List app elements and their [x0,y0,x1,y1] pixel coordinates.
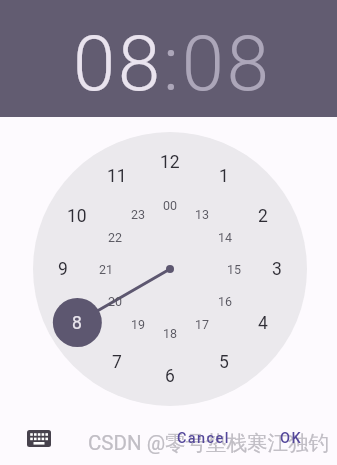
staticText: 18 [163,326,178,341]
staticText: 4 [258,313,268,334]
staticText: 8 [72,313,82,334]
staticText: 13 [195,207,210,222]
staticText: 21 [99,262,114,277]
staticText: 11 [107,166,127,187]
button[interactable]: OK [271,422,311,454]
staticText: 00 [163,198,178,213]
button[interactable] [15,418,63,458]
staticText: 22 [108,230,123,245]
staticText: 16 [218,294,233,309]
staticText: 23 [131,207,146,222]
staticText: 12 [160,152,180,173]
staticText: 6 [165,366,175,387]
staticText: 2 [258,206,268,227]
staticText: 9 [58,259,68,280]
staticText: 5 [219,352,229,373]
staticText: 7 [112,352,122,373]
staticText: OK [280,430,302,447]
staticText: 08:08 [73,19,272,108]
staticText: 10 [67,206,87,227]
staticText: 1 [219,166,229,187]
button[interactable]: Cancel [171,422,235,454]
staticText: 14 [218,230,233,245]
staticText: 3 [272,259,282,280]
staticText: Cancel [177,430,230,447]
staticText: 20 [108,294,123,309]
staticText: 15 [227,262,242,277]
staticText: 17 [195,317,210,332]
staticText: CSDN @零号垫栈寒江独钓 [88,430,330,456]
staticText: 19 [131,317,146,332]
